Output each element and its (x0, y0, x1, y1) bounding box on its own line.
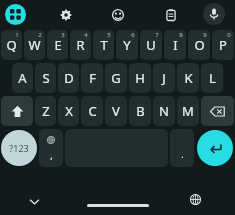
staticText: R (76, 36, 85, 54)
button[interactable]: T (93, 30, 114, 60)
staticText: P (219, 36, 227, 54)
staticText: M (182, 102, 194, 120)
staticText: X (65, 102, 73, 120)
button[interactable]: M (177, 96, 199, 126)
staticText: O (194, 36, 205, 54)
button[interactable]: Change language (187, 191, 203, 207)
staticText: F (89, 69, 96, 87)
button[interactable]: G (105, 63, 127, 93)
button[interactable]: Clipboard (162, 6, 179, 23)
staticText: 5 (107, 31, 111, 39)
staticText: D (64, 69, 74, 87)
button[interactable]: Shift (1, 96, 33, 126)
button[interactable]: Hide keyboard (26, 193, 42, 209)
staticText: Z (42, 102, 50, 120)
button[interactable]: Enter (196, 129, 234, 167)
staticText: 2 (38, 31, 42, 39)
staticText: 6 (131, 31, 135, 39)
staticText: B (136, 102, 145, 120)
staticText: 3 (61, 31, 65, 39)
button[interactable]: W (24, 30, 45, 60)
button[interactable]: N (153, 96, 175, 126)
button[interactable]: X (58, 96, 79, 126)
staticText: S (42, 69, 50, 87)
button[interactable]: U (140, 30, 162, 60)
staticText: G (111, 69, 121, 87)
staticText: W (28, 36, 41, 54)
button[interactable]: I (164, 30, 186, 60)
staticText: Q (6, 36, 17, 54)
button[interactable]: E (47, 30, 68, 60)
staticText: T (100, 36, 108, 54)
staticText: V (112, 102, 120, 120)
staticText: 4 (84, 31, 88, 39)
staticText: J (162, 69, 166, 87)
staticText: 9 (203, 31, 207, 39)
button[interactable]: O (188, 30, 210, 60)
staticText: C (88, 102, 97, 120)
button[interactable]: Apps (5, 4, 26, 25)
staticText: N (159, 102, 169, 120)
button[interactable]: R (70, 30, 91, 60)
button[interactable]: V (105, 96, 127, 126)
staticText: 8 (179, 31, 183, 39)
staticText: E (54, 36, 62, 54)
button[interactable]: Period (170, 129, 194, 167)
button[interactable]: Q (1, 30, 22, 60)
button[interactable]: B (129, 96, 151, 126)
button[interactable]: Voice input (203, 3, 225, 25)
staticText: Y (123, 36, 131, 54)
button[interactable]: D (58, 63, 79, 93)
button[interactable]: Backspace (201, 96, 234, 126)
button[interactable]: P (212, 30, 234, 60)
button[interactable]: K (177, 63, 199, 93)
staticText: 7 (155, 31, 159, 39)
staticText: . (181, 148, 184, 160)
button[interactable]: ?123 (1, 129, 37, 167)
button[interactable]: A (12, 63, 33, 93)
button[interactable]: C (81, 96, 103, 126)
staticText: L (209, 69, 216, 87)
button[interactable]: J (153, 63, 175, 93)
staticText: , (50, 149, 53, 161)
button[interactable]: Settings (57, 6, 74, 23)
staticText: U (146, 36, 156, 54)
button[interactable]: Comma, language (39, 129, 63, 167)
staticText: ?123 (9, 142, 29, 154)
staticText: 1 (15, 31, 19, 39)
staticText: I (173, 36, 178, 54)
button[interactable]: L (201, 63, 223, 93)
button[interactable]: F (81, 63, 103, 93)
staticText: H (135, 69, 145, 87)
button[interactable]: Emoji (109, 6, 126, 23)
staticText: K (184, 69, 193, 87)
staticText: A (18, 69, 27, 87)
button[interactable]: H (129, 63, 151, 93)
button[interactable]: S (35, 63, 56, 93)
button[interactable]: Y (116, 30, 138, 60)
staticText: 0 (227, 31, 231, 39)
button[interactable]: Z (35, 96, 56, 126)
